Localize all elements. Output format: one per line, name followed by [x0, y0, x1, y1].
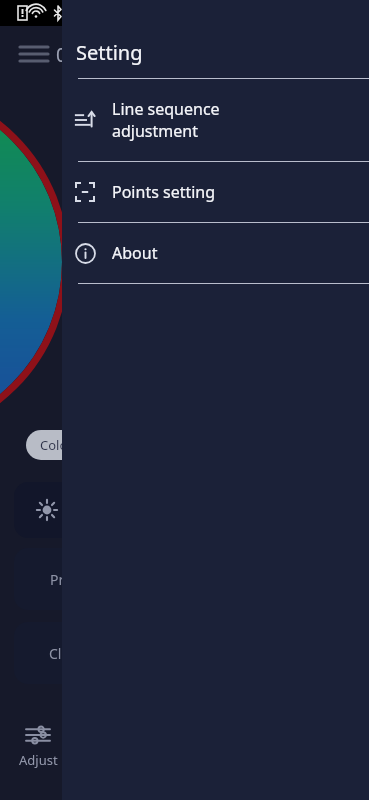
staticText: Color: [40, 436, 73, 454]
staticText: Line sequence adjustment: [112, 98, 369, 142]
button[interactable]: Points setting: [62, 162, 369, 222]
button[interactable]: Classic: [14, 622, 106, 684]
staticText: Preset: [50, 570, 92, 589]
staticText: Adjust: [19, 751, 58, 769]
button[interactable]: Adjust: [12, 722, 64, 769]
button[interactable]: Menu: [18, 38, 50, 70]
button[interactable]: Line sequence adjustment: [62, 79, 369, 161]
staticText: Points setting: [112, 181, 369, 203]
button[interactable]: Preset: [14, 548, 106, 610]
staticText: Setting: [76, 39, 143, 66]
button[interactable]: [14, 482, 104, 538]
staticText: About: [112, 242, 369, 264]
staticText: Classic: [49, 644, 94, 663]
button[interactable]: About: [62, 223, 369, 283]
button[interactable]: Color: [26, 430, 100, 460]
staticText: 0: [56, 42, 67, 68]
